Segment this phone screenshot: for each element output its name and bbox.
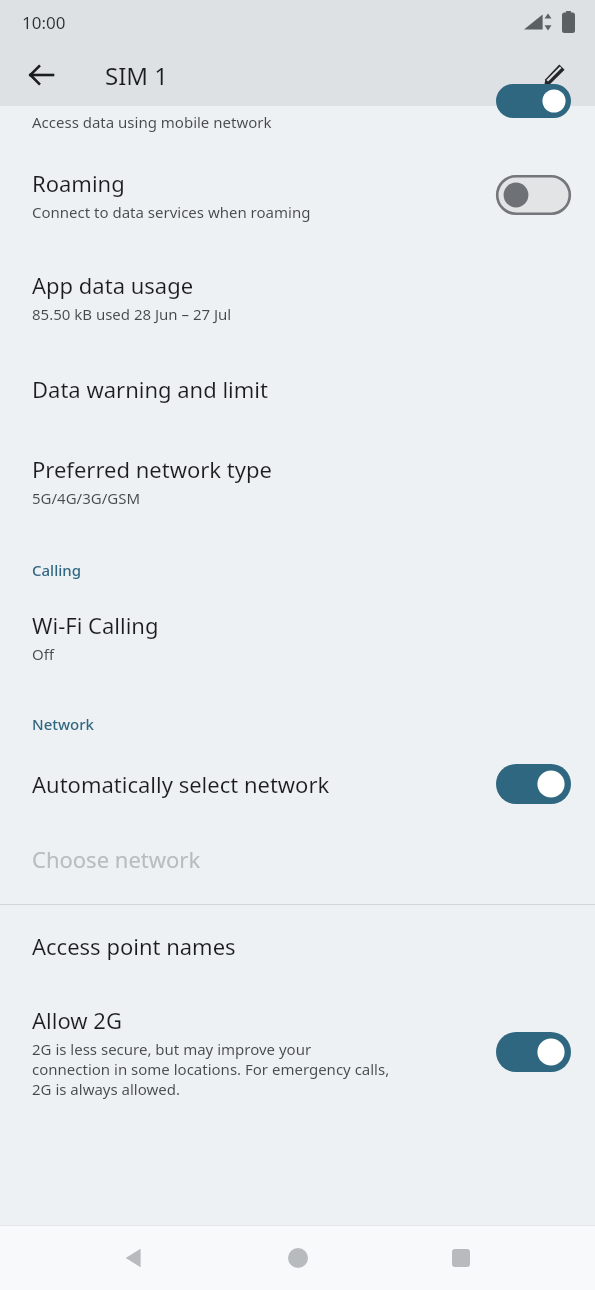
staticText: Choose network bbox=[32, 844, 201, 874]
staticText: 2G is always allowed. bbox=[32, 1079, 181, 1099]
button[interactable]: Edit bbox=[531, 52, 577, 98]
staticText: 85.50 kB used 28 Jun – 27 Jul bbox=[32, 304, 232, 324]
staticText: connection in some locations. For emerge… bbox=[32, 1059, 390, 1079]
button[interactable]: Toggle on bbox=[496, 764, 571, 804]
staticText: Connect to data services when roaming bbox=[32, 202, 311, 222]
button[interactable]: Recent apps bbox=[431, 1228, 491, 1288]
button[interactable]: Toggle off bbox=[496, 175, 571, 215]
button[interactable]: App data usage bbox=[0, 244, 595, 348]
button[interactable]: Choose network bbox=[0, 822, 595, 904]
staticText: 2G is less secure, but may improve your bbox=[32, 1039, 312, 1059]
staticText: SIM 1 bbox=[105, 59, 169, 92]
staticText: Access point names bbox=[32, 931, 236, 961]
button[interactable]: Roaming bbox=[0, 140, 595, 244]
staticText: Data warning and limit bbox=[32, 374, 268, 404]
button[interactable]: Back bbox=[18, 52, 64, 98]
button[interactable]: Back bbox=[104, 1228, 164, 1288]
button[interactable]: Access point names bbox=[0, 905, 595, 987]
button[interactable]: Toggle on bbox=[496, 84, 571, 118]
button[interactable]: Allow 2G bbox=[0, 987, 595, 1119]
button[interactable]: Wi-Fi Calling bbox=[0, 592, 595, 686]
button[interactable]: Toggle on bbox=[496, 1032, 571, 1072]
staticText: Wi-Fi Calling bbox=[32, 610, 159, 640]
staticText: App data usage bbox=[32, 270, 194, 300]
staticText: Automatically select network bbox=[32, 769, 330, 799]
staticText: Preferred network type bbox=[32, 454, 272, 484]
button[interactable]: Data warning and limit bbox=[0, 348, 595, 430]
button[interactable]: Automatically select network bbox=[0, 746, 595, 822]
staticText: Roaming bbox=[32, 168, 125, 198]
staticText: Calling bbox=[32, 560, 81, 580]
staticText: Network bbox=[32, 714, 94, 734]
staticText: 5G/4G/3G/GSM bbox=[32, 488, 141, 508]
button[interactable]: Home bbox=[268, 1228, 328, 1288]
button[interactable]: Preferred network type bbox=[0, 430, 595, 530]
staticText: Access data using mobile network bbox=[32, 112, 272, 132]
staticText: 10:00 bbox=[22, 11, 66, 34]
staticText: Off bbox=[32, 644, 55, 664]
staticText: Allow 2G bbox=[32, 1005, 122, 1035]
